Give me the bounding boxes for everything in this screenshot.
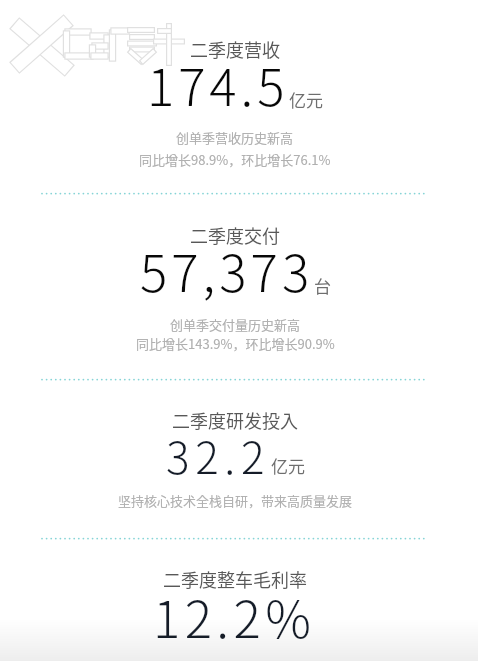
staticText: 亿元 [289, 87, 323, 112]
staticText: 174.5 [147, 47, 289, 121]
staticText: 创单季交付量历史新高 [170, 315, 301, 334]
staticText: 二季度研发投入 [172, 407, 298, 433]
staticText: 亿元 [271, 453, 305, 478]
staticText: 同比增长98.9%，环比增长76.1% [139, 150, 331, 169]
staticText: 坚持核心技术全栈自研，带来高质量发展 [118, 491, 353, 510]
staticText: 创单季营收历史新高 [176, 128, 294, 147]
staticText: 同比增长143.9%，环比增长90.9% [136, 334, 335, 353]
staticText: 台 [314, 273, 331, 298]
staticText: 57,373 [140, 233, 314, 307]
staticText: 12.2% [153, 579, 316, 653]
staticText: 二季度交付 [190, 222, 280, 248]
staticText: 二季度整车毛利率 [163, 566, 307, 592]
staticText: 32.2 [166, 423, 271, 487]
staticText: 二季度营收 [190, 36, 280, 62]
